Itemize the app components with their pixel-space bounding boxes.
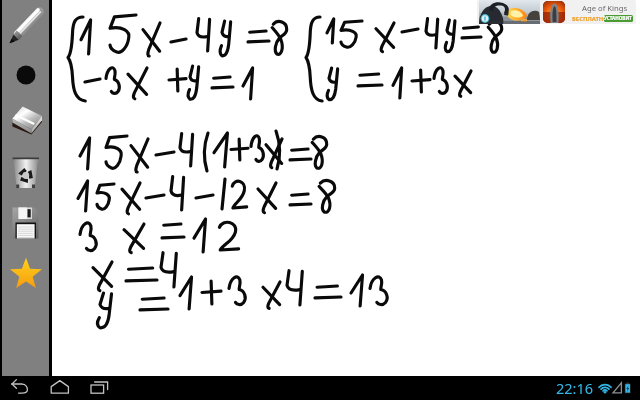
- button[interactable]: Favourite: [2, 248, 49, 298]
- button[interactable]: Save: [2, 198, 49, 248]
- button[interactable]: Brush colour: [2, 50, 49, 100]
- button[interactable]: Eraser: [2, 100, 49, 148]
- button[interactable]: Age of Kings advertisement: [477, 0, 636, 24]
- button[interactable]: Pen: [2, 0, 49, 50]
- button[interactable]: Install: [604, 15, 633, 22]
- button[interactable]: Home: [40, 376, 80, 400]
- button[interactable]: Clear all: [2, 148, 49, 198]
- staticText: БЕСПЛАТНО: [572, 15, 608, 23]
- staticText: 22:16: [556, 378, 594, 398]
- button[interactable]: Recent apps: [80, 376, 120, 400]
- button[interactable]: Back: [0, 376, 40, 400]
- staticText: Age of Kings: [582, 3, 628, 13]
- staticText: УСТАНОВИТЬ: [604, 15, 633, 22]
